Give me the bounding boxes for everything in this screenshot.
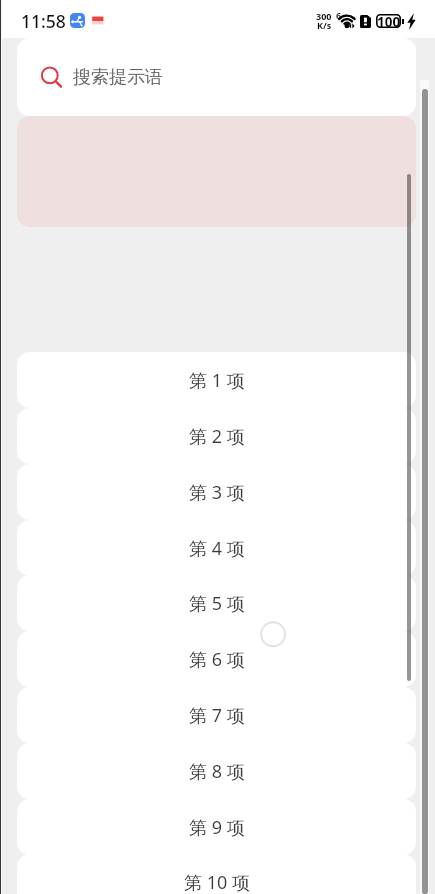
button[interactable]: 第 2 项 <box>17 408 416 464</box>
staticText: 搜索提示语 <box>73 66 163 89</box>
button[interactable]: 第 10 项 <box>17 854 416 894</box>
staticText: 第 8 项 <box>189 759 245 784</box>
button[interactable]: 搜索提示语 <box>17 38 416 116</box>
button[interactable] <box>17 116 416 227</box>
button[interactable]: 第 4 项 <box>17 520 416 576</box>
staticText: 第 7 项 <box>189 703 245 728</box>
staticText: 300 <box>316 10 332 22</box>
button[interactable]: 第 8 项 <box>17 743 416 799</box>
staticText: 11:58 <box>21 9 66 33</box>
staticText: 第 2 项 <box>189 424 245 449</box>
staticText: 100 <box>377 13 401 27</box>
staticText: 第 3 项 <box>189 480 245 505</box>
button[interactable]: 第 3 项 <box>17 464 416 520</box>
button[interactable]: 第 5 项 <box>17 575 416 631</box>
button[interactable]: 第 9 项 <box>17 799 416 855</box>
staticText: 6 <box>336 9 342 21</box>
staticText: 第 9 项 <box>189 815 245 840</box>
staticText: 第 1 项 <box>189 368 245 393</box>
button[interactable]: 第 7 项 <box>17 687 416 743</box>
staticText: 第 6 项 <box>189 647 245 672</box>
button[interactable]: 第 6 项 <box>17 631 416 687</box>
staticText: 第 5 项 <box>189 591 245 616</box>
staticText: K/s <box>317 19 332 31</box>
staticText: 第 4 项 <box>189 536 245 561</box>
staticText: 第 10 项 <box>184 870 250 894</box>
button[interactable]: 第 1 项 <box>17 352 416 408</box>
